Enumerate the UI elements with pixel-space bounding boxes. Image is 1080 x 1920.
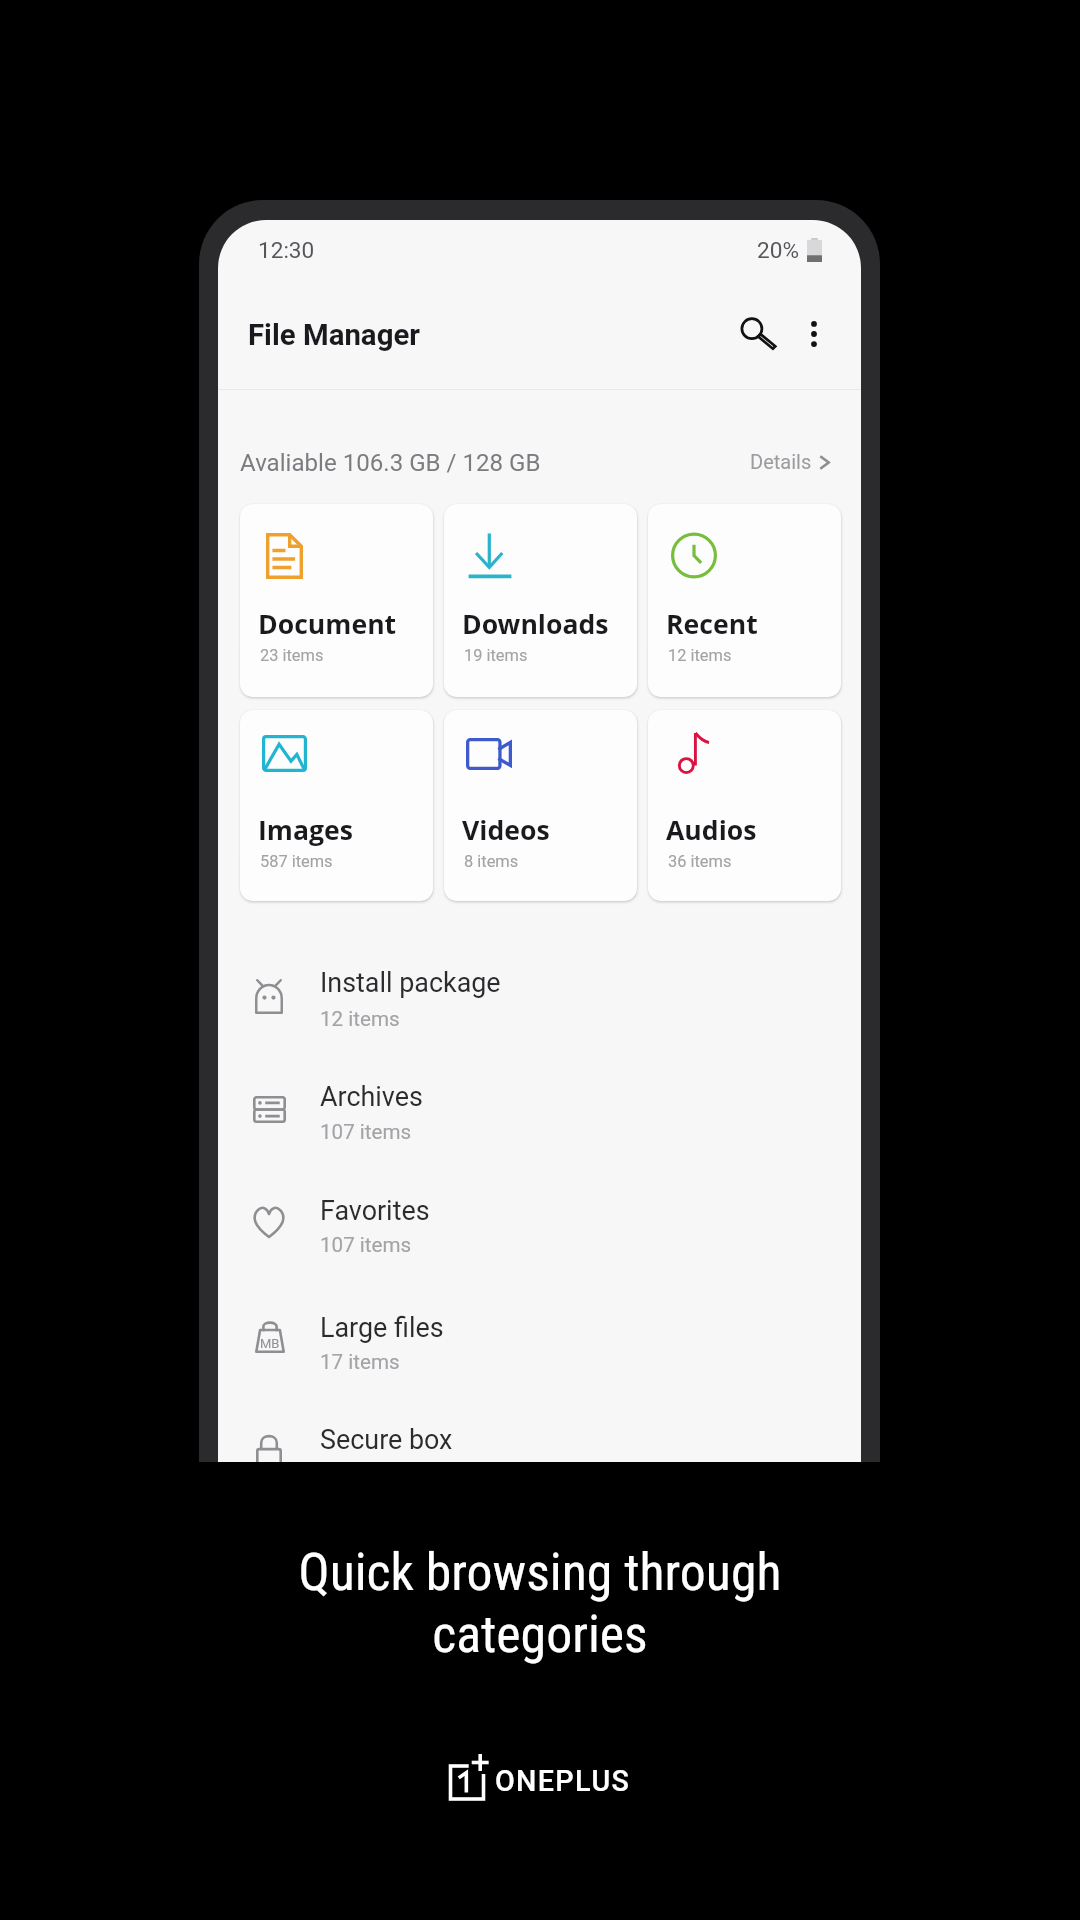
staticText: 19 items	[464, 646, 528, 665]
staticText: Large files	[320, 1312, 444, 1344]
staticText: Recent	[666, 606, 758, 642]
button[interactable]: Videos	[444, 710, 637, 901]
button[interactable]: Document	[240, 504, 433, 697]
button[interactable]: Favorites	[218, 1180, 861, 1293]
button[interactable]: Images	[240, 710, 433, 901]
staticText: 17 items	[320, 1350, 400, 1374]
staticText: Install package	[320, 967, 501, 999]
button[interactable]: Details	[748, 446, 836, 488]
staticText: MB	[260, 1336, 280, 1351]
staticText: Secure box	[320, 1424, 453, 1456]
button[interactable]: Search	[722, 299, 792, 369]
button[interactable]: Audios	[648, 710, 841, 901]
staticText: Quick browsing through categories	[0, 1542, 1080, 1664]
staticText: Details	[750, 450, 812, 473]
staticText: 587 items	[260, 852, 333, 871]
staticText: Archives	[320, 1081, 423, 1113]
button[interactable]: Secure box	[218, 1409, 861, 1462]
staticText: Avaliable 106.3 GB / 128 GB	[240, 449, 541, 477]
staticText: 36 items	[668, 852, 732, 871]
staticText: Images	[258, 812, 353, 848]
button[interactable]: More options	[782, 302, 846, 366]
staticText: 8 items	[464, 852, 519, 871]
button[interactable]: Archives	[218, 1066, 861, 1179]
staticText: 107 items	[320, 1233, 412, 1257]
button[interactable]: Recent	[648, 504, 841, 697]
staticText: Document	[258, 606, 397, 642]
staticText: 107 items	[320, 1120, 412, 1144]
staticText: 12 items	[668, 646, 732, 665]
staticText: Downloads	[462, 606, 609, 642]
button[interactable]: MB	[218, 1297, 861, 1410]
staticText: Favorites	[320, 1195, 430, 1227]
staticText: 12:30	[258, 237, 315, 263]
staticText: File Manager	[248, 318, 421, 352]
staticText: 20%	[757, 237, 799, 263]
button[interactable]: Downloads	[444, 504, 637, 697]
staticText: Audios	[666, 812, 757, 848]
staticText: Videos	[462, 812, 550, 848]
staticText: 23 items	[260, 646, 324, 665]
staticText: ONEPLUS	[495, 1764, 631, 1798]
button[interactable]: Install package	[218, 952, 861, 1065]
staticText: 12 items	[320, 1007, 400, 1031]
